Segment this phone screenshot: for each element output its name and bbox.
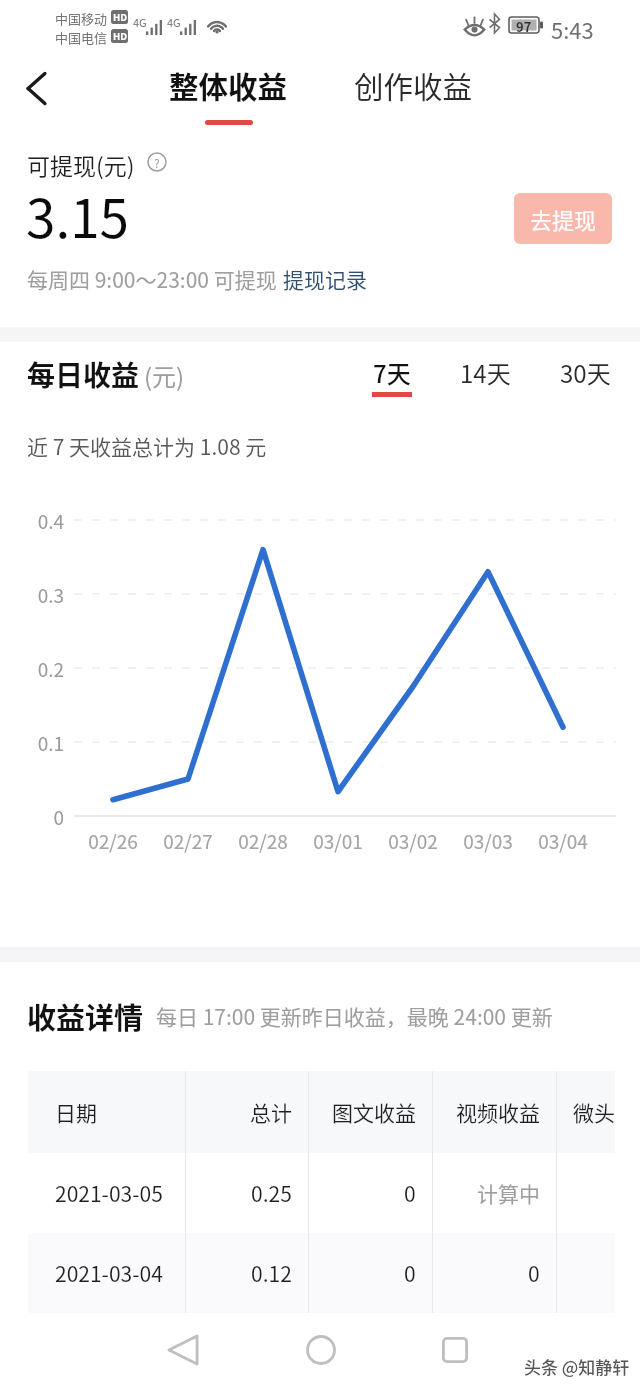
staticText: 每日收益 [27, 354, 140, 395]
staticText: 0.12 [251, 1258, 292, 1288]
staticText: 30天 [560, 355, 611, 390]
staticText: 近 7 天收益总计为 1.08 元 [27, 431, 267, 461]
button[interactable]: 去提现 [514, 193, 612, 244]
staticText: 03/01 [313, 827, 363, 855]
staticText: 中国电信 [55, 28, 108, 47]
staticText: 收益详情 [27, 995, 144, 1037]
button[interactable]: Back [4, 56, 68, 120]
staticText: 4G [133, 14, 147, 30]
staticText: 14天 [460, 355, 511, 390]
button[interactable]: Help [147, 152, 167, 172]
staticText: 7天 [373, 355, 411, 390]
button[interactable]: 14天 [441, 355, 529, 397]
staticText: 0 [404, 1258, 416, 1288]
staticText: 0 [404, 1178, 416, 1208]
staticText: 0.25 [251, 1178, 292, 1208]
staticText: 日期 [55, 1097, 97, 1127]
staticText: 0.1 [37, 729, 64, 757]
staticText: HD [113, 29, 127, 43]
staticText: 创作收益 [354, 64, 473, 107]
staticText: 03/02 [388, 827, 438, 855]
staticText: 0.4 [37, 507, 64, 535]
staticText: 头条 @知静轩 [524, 1354, 630, 1379]
button[interactable]: 7天 [352, 355, 432, 405]
staticText: 微头 [573, 1097, 615, 1127]
staticText: 每周四 9:00～23:00 可提现 [27, 264, 277, 294]
staticText: 0 [528, 1258, 540, 1288]
staticText: (元) [144, 358, 185, 393]
button[interactable]: 创作收益 [343, 64, 483, 114]
button[interactable]: 30天 [541, 355, 629, 397]
staticText: 03/04 [538, 827, 588, 855]
staticText: 去提现 [530, 203, 597, 235]
staticText: 总计 [250, 1097, 292, 1127]
staticText: 5:43 [551, 13, 594, 45]
staticText: 3.15 [26, 177, 129, 254]
staticText: 02/26 [88, 827, 138, 855]
button[interactable]: 提现记录 [283, 264, 367, 294]
staticText: 97 [516, 17, 532, 33]
staticText: 0.2 [37, 655, 64, 683]
staticText: 4G [167, 14, 181, 30]
staticText: 中国移动 [55, 9, 108, 28]
staticText: 视频收益 [456, 1097, 540, 1127]
staticText: 0.3 [37, 581, 64, 609]
staticText: 02/27 [163, 827, 213, 855]
button[interactable]: Home [291, 1320, 351, 1380]
staticText: 03/03 [463, 827, 513, 855]
staticText: 2021-03-04 [55, 1258, 163, 1288]
staticText: 2021-03-05 [55, 1178, 163, 1208]
staticText: 0 [53, 803, 64, 831]
staticText: 可提现(元) [27, 148, 135, 181]
button[interactable]: Back [153, 1320, 213, 1380]
staticText: ? [154, 154, 160, 171]
button[interactable]: 整体收益 [158, 64, 298, 128]
staticText: 提现记录 [283, 264, 367, 294]
staticText: 图文收益 [332, 1097, 416, 1127]
staticText: HD [113, 10, 127, 24]
staticText: 整体收益 [169, 64, 288, 107]
staticText: 每日 17:00 更新昨日收益，最晚 24:00 更新 [156, 1001, 553, 1031]
button[interactable]: Recents [425, 1320, 485, 1380]
staticText: 计算中 [477, 1178, 540, 1208]
staticText: 02/28 [238, 827, 288, 855]
